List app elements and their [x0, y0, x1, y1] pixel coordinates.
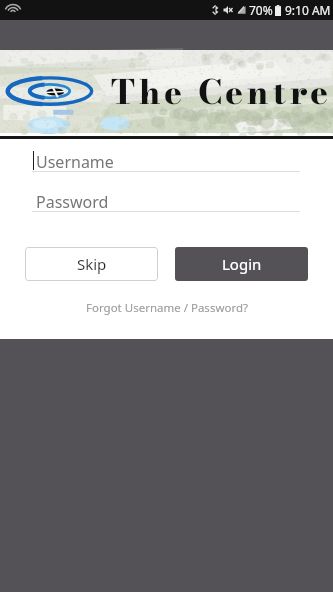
staticText: 70% — [249, 2, 273, 18]
staticText: Login — [222, 254, 262, 274]
button[interactable]: Skip — [25, 247, 158, 281]
staticText: 9:10 AM — [285, 2, 331, 18]
staticText: Skip — [77, 254, 107, 274]
button[interactable]: Login — [175, 247, 308, 281]
button[interactable]: Forgot Username / Password? — [0, 295, 333, 321]
staticText: Forgot Username / Password? — [86, 300, 248, 316]
button[interactable]: Password — [32, 179, 300, 212]
button[interactable]: Username — [32, 139, 300, 172]
staticText: Password — [36, 191, 109, 213]
other: The Centre — [0, 50, 333, 139]
staticText: Username — [36, 151, 114, 173]
